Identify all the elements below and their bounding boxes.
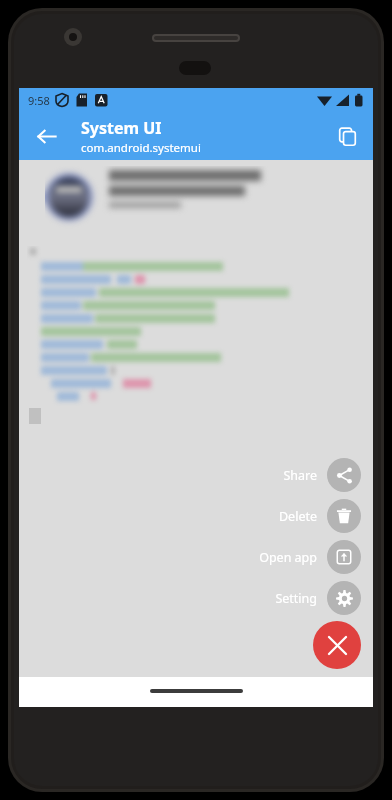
- staticText: 9:58: [28, 93, 50, 108]
- button[interactable]: Copy: [329, 118, 365, 154]
- staticText: com.android.systemui: [81, 140, 201, 156]
- button[interactable]: Delete: [278, 499, 361, 533]
- button[interactable]: Open app: [259, 540, 361, 574]
- staticText: Open app: [259, 549, 317, 566]
- button[interactable]: Setting: [275, 581, 361, 615]
- button[interactable]: Share: [283, 458, 361, 492]
- staticText: System UI: [81, 117, 162, 139]
- staticText: Setting: [275, 590, 317, 607]
- staticText: Share: [283, 467, 317, 484]
- button[interactable]: Back: [29, 119, 63, 153]
- button[interactable]: Close menu: [313, 621, 361, 669]
- staticText: Delete: [278, 508, 317, 525]
